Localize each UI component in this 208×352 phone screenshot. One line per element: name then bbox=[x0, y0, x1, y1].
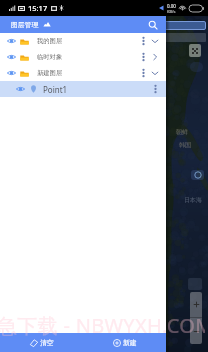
button[interactable]: Toggle visibility bbox=[0, 49, 166, 65]
button[interactable]: More options bbox=[137, 67, 149, 79]
button[interactable]: Collapse bbox=[149, 35, 161, 47]
staticText: 15:17 bbox=[28, 3, 48, 13]
staticText: KB/s bbox=[167, 9, 176, 14]
staticText: 韩国 bbox=[179, 141, 191, 149]
staticText: 0.00 bbox=[167, 3, 176, 9]
staticText: 新建图层 bbox=[37, 69, 63, 77]
button[interactable]: Toggle visibility bbox=[15, 84, 25, 94]
staticText: 日本海 bbox=[184, 196, 202, 204]
button[interactable]: Toggle visibility bbox=[6, 36, 16, 46]
staticText: 临时对象 bbox=[37, 53, 63, 61]
staticText: 清空 bbox=[40, 338, 54, 347]
staticText: 图层管理 bbox=[11, 20, 39, 29]
button[interactable]: More options bbox=[137, 51, 149, 63]
button[interactable]: 清空 bbox=[0, 333, 83, 352]
button[interactable]: Expand bbox=[149, 51, 161, 63]
button[interactable]: More options bbox=[137, 35, 149, 47]
button[interactable]: More options bbox=[149, 83, 161, 95]
button[interactable]: Map layers bbox=[189, 44, 201, 57]
staticText: 我的图层 bbox=[37, 37, 63, 45]
staticText: 急下载 - NBWYXH.COM. bbox=[0, 312, 205, 339]
button[interactable]: Toggle visibility bbox=[6, 52, 16, 62]
staticText: 朝鲜 bbox=[176, 128, 188, 136]
button[interactable]: Search bbox=[145, 17, 161, 33]
staticText: Point1 bbox=[43, 84, 68, 95]
button[interactable]: Toggle visibility bbox=[0, 33, 166, 49]
staticText: 新建 bbox=[123, 338, 137, 347]
button[interactable]: Zoom in bbox=[190, 292, 202, 317]
button[interactable]: Zoom out bbox=[190, 318, 202, 344]
button[interactable]: Toggle visibility bbox=[6, 68, 16, 78]
button[interactable]: 新建 bbox=[83, 333, 166, 352]
button[interactable]: Toggle visibility bbox=[0, 65, 166, 81]
button[interactable]: Collapse bbox=[149, 67, 161, 79]
button[interactable]: Toggle visibility bbox=[0, 81, 166, 97]
